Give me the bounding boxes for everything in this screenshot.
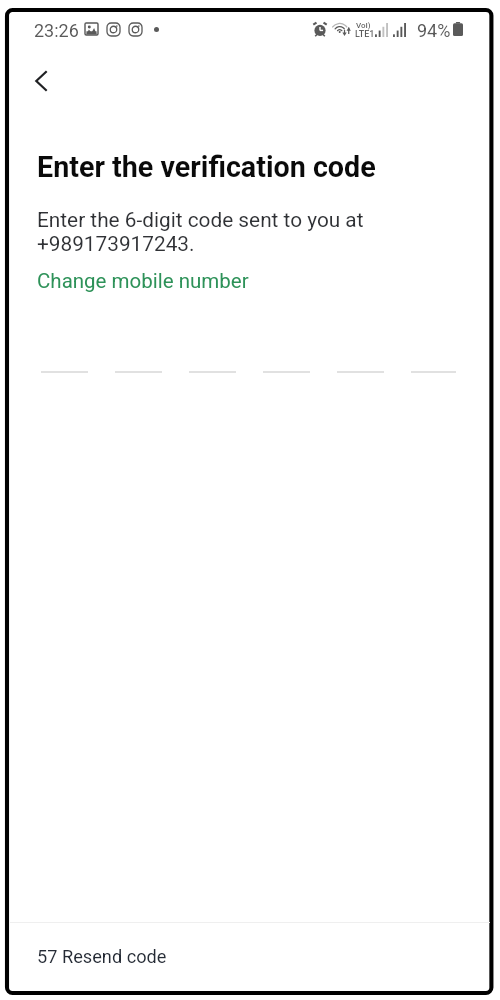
staticText: LTE1 [355,29,375,40]
staticText: 94% [417,20,451,41]
button[interactable]: Code digit 3 [189,347,236,373]
button[interactable]: Code digit 1 [41,347,88,373]
button[interactable]: Code digit 6 [411,347,456,373]
staticText: VoI) [356,21,371,30]
staticText: Change mobile number [37,269,249,293]
button[interactable]: 57 Resend code [10,923,490,989]
button[interactable]: Change mobile number [31,265,255,297]
staticText: 57 Resend code [37,946,167,967]
button[interactable]: Code digit 2 [115,347,162,373]
button[interactable]: Back [17,57,65,105]
staticText: 23:26 [34,20,79,41]
button[interactable]: Code digit 4 [263,347,310,373]
staticText: Enter the verification code [37,150,376,184]
staticText: Enter the 6-digit code sent to you at +9… [37,208,364,256]
button[interactable]: Code digit 5 [337,347,384,373]
